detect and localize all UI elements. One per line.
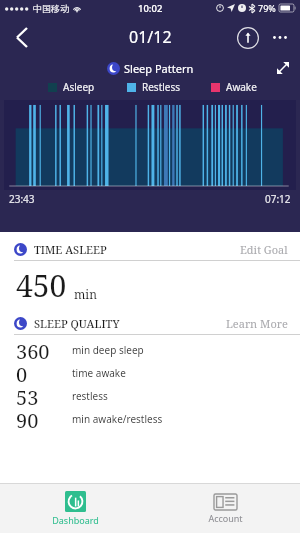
staticText: restless: [72, 389, 108, 403]
staticText: Dashboard: [52, 514, 99, 526]
staticText: 450: [16, 265, 67, 306]
staticText: 07:12: [265, 192, 291, 206]
button[interactable]: Learn More: [226, 316, 288, 331]
button[interactable]: Expand chart: [272, 58, 294, 78]
staticText: Restless: [142, 80, 181, 94]
staticText: 0: [16, 361, 28, 384]
staticText: 10:02: [138, 2, 163, 15]
staticText: 23:43: [9, 192, 35, 206]
button[interactable]: More options: [266, 23, 294, 51]
staticText: Edit Goal: [240, 242, 288, 257]
button[interactable]: Dashboard: [0, 484, 150, 533]
staticText: 79%: [258, 2, 276, 14]
staticText: Learn More: [226, 316, 288, 331]
button[interactable]: Share: [234, 24, 261, 51]
staticText: time awake: [72, 366, 126, 380]
staticText: min deep sleep: [72, 343, 144, 357]
staticText: 90: [16, 407, 39, 430]
staticText: Account: [208, 512, 243, 524]
staticText: TIME ASLEEP: [34, 242, 107, 257]
staticText: 360: [16, 338, 50, 361]
staticText: 53: [16, 384, 39, 407]
staticText: min awake/restless: [72, 412, 163, 426]
staticText: 中国移动: [33, 3, 69, 14]
staticText: Awake: [226, 80, 257, 94]
staticText: 01/12: [129, 26, 172, 48]
staticText: Asleep: [63, 80, 95, 94]
staticText: Sleep Pattern: [124, 61, 194, 76]
staticText: SLEEP QUALITY: [34, 316, 120, 331]
staticText: min: [74, 286, 97, 302]
button[interactable]: Account: [150, 484, 300, 533]
button[interactable]: Edit Goal: [240, 242, 288, 257]
button[interactable]: Back: [2, 18, 40, 56]
